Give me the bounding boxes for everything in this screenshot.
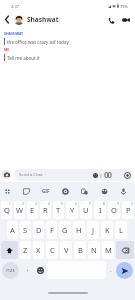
staticText: L <box>119 225 123 235</box>
staticText: V <box>64 245 69 255</box>
button[interactable]: ?123 <box>2 262 19 279</box>
button[interactable]: I <box>94 201 106 219</box>
staticText: A <box>10 225 15 235</box>
staticText: 79% <box>120 4 128 9</box>
button[interactable]: G <box>59 221 71 239</box>
button[interactable]: Camera <box>2 170 11 179</box>
staticText: W <box>16 205 23 215</box>
button[interactable]: Send <box>116 262 133 279</box>
staticText: N <box>91 245 97 255</box>
button[interactable]: M <box>102 241 114 259</box>
staticText: 8 <box>103 202 105 206</box>
staticText: O <box>111 205 117 215</box>
staticText: . <box>110 266 112 274</box>
button[interactable]: N <box>88 241 100 259</box>
button[interactable]: Settings <box>59 185 71 197</box>
staticText: G <box>62 225 68 235</box>
button[interactable]: Call <box>104 13 118 27</box>
button[interactable]: V <box>60 241 72 259</box>
button[interactable]: Shift <box>1 241 18 259</box>
button[interactable]: E <box>27 201 38 219</box>
staticText: 3 <box>35 202 37 206</box>
staticText: K <box>105 225 110 235</box>
button[interactable]: R <box>40 201 51 219</box>
button[interactable]: Theme <box>98 185 110 197</box>
staticText: S <box>23 225 28 235</box>
staticText: 7 <box>89 202 91 206</box>
button[interactable]: Voice input <box>117 185 129 197</box>
staticText: 9 <box>117 202 119 206</box>
staticText: ?123 <box>6 268 15 273</box>
button[interactable]: Back <box>0 13 13 26</box>
button[interactable]: B <box>74 241 86 259</box>
staticText: ME <box>4 47 10 52</box>
button[interactable]: F <box>46 221 57 239</box>
button[interactable]: Y <box>66 201 78 219</box>
staticText: M <box>105 245 112 255</box>
staticText: T <box>56 205 61 215</box>
button[interactable]: O <box>108 201 120 219</box>
button[interactable]: P <box>122 201 134 219</box>
staticText: 2 <box>22 202 24 206</box>
staticText: Q <box>4 205 10 215</box>
staticText: Send a Chat <box>19 172 43 178</box>
staticText: 6 <box>75 202 77 206</box>
staticText: P <box>126 205 131 215</box>
staticText: Z <box>23 245 28 255</box>
staticText: D <box>36 225 42 235</box>
button[interactable]: A <box>7 221 18 239</box>
staticText: H <box>76 225 82 235</box>
staticText: 1 <box>9 202 11 206</box>
staticText: B <box>78 245 83 255</box>
button[interactable]: Emoji <box>36 266 45 275</box>
button[interactable]: Comma <box>19 260 36 280</box>
button[interactable]: L <box>115 221 127 239</box>
button[interactable]: D <box>33 221 44 239</box>
staticText: Y <box>70 205 75 215</box>
staticText: 0 <box>131 202 133 206</box>
button[interactable]: Q <box>1 201 12 219</box>
button[interactable]: H <box>73 221 85 239</box>
staticText: Shashwat <box>27 15 59 24</box>
button[interactable]: J <box>87 221 99 239</box>
button[interactable]: Video call <box>119 13 133 27</box>
staticText: J <box>92 225 95 235</box>
staticText: F <box>50 225 54 235</box>
staticText: C <box>50 245 55 255</box>
staticText: Tell me about it <box>7 55 40 61</box>
staticText: 4 <box>48 202 50 206</box>
staticText: X <box>36 245 41 255</box>
button[interactable]: W <box>14 201 25 219</box>
button[interactable]: Backspace <box>116 241 134 259</box>
button[interactable]: Clipboard <box>78 185 90 197</box>
button[interactable]: Z <box>20 241 31 259</box>
staticText: the office was crazy asf today <box>7 39 69 45</box>
button[interactable]: Period <box>106 260 116 280</box>
button[interactable]: T <box>53 201 64 219</box>
button[interactable]: K <box>101 221 113 239</box>
button[interactable]: C <box>46 241 58 259</box>
button[interactable]: U <box>80 201 92 219</box>
button[interactable]: S <box>20 221 31 239</box>
button[interactable]: GIF <box>40 185 52 197</box>
staticText: 5 <box>61 202 63 206</box>
button[interactable]: Apps <box>1 185 13 197</box>
staticText: , <box>27 265 29 273</box>
button[interactable]: X <box>33 241 44 259</box>
staticText: GIF <box>42 188 50 194</box>
button[interactable]: Stickers <box>20 185 32 197</box>
staticText: SHASHWAT <box>4 31 24 36</box>
staticText: U <box>83 205 89 215</box>
staticText: 2:37 <box>11 4 19 9</box>
staticText: R <box>43 205 48 215</box>
staticText: I <box>99 205 102 215</box>
staticText: E <box>30 205 35 215</box>
button[interactable]: Send a Chat <box>14 169 133 181</box>
